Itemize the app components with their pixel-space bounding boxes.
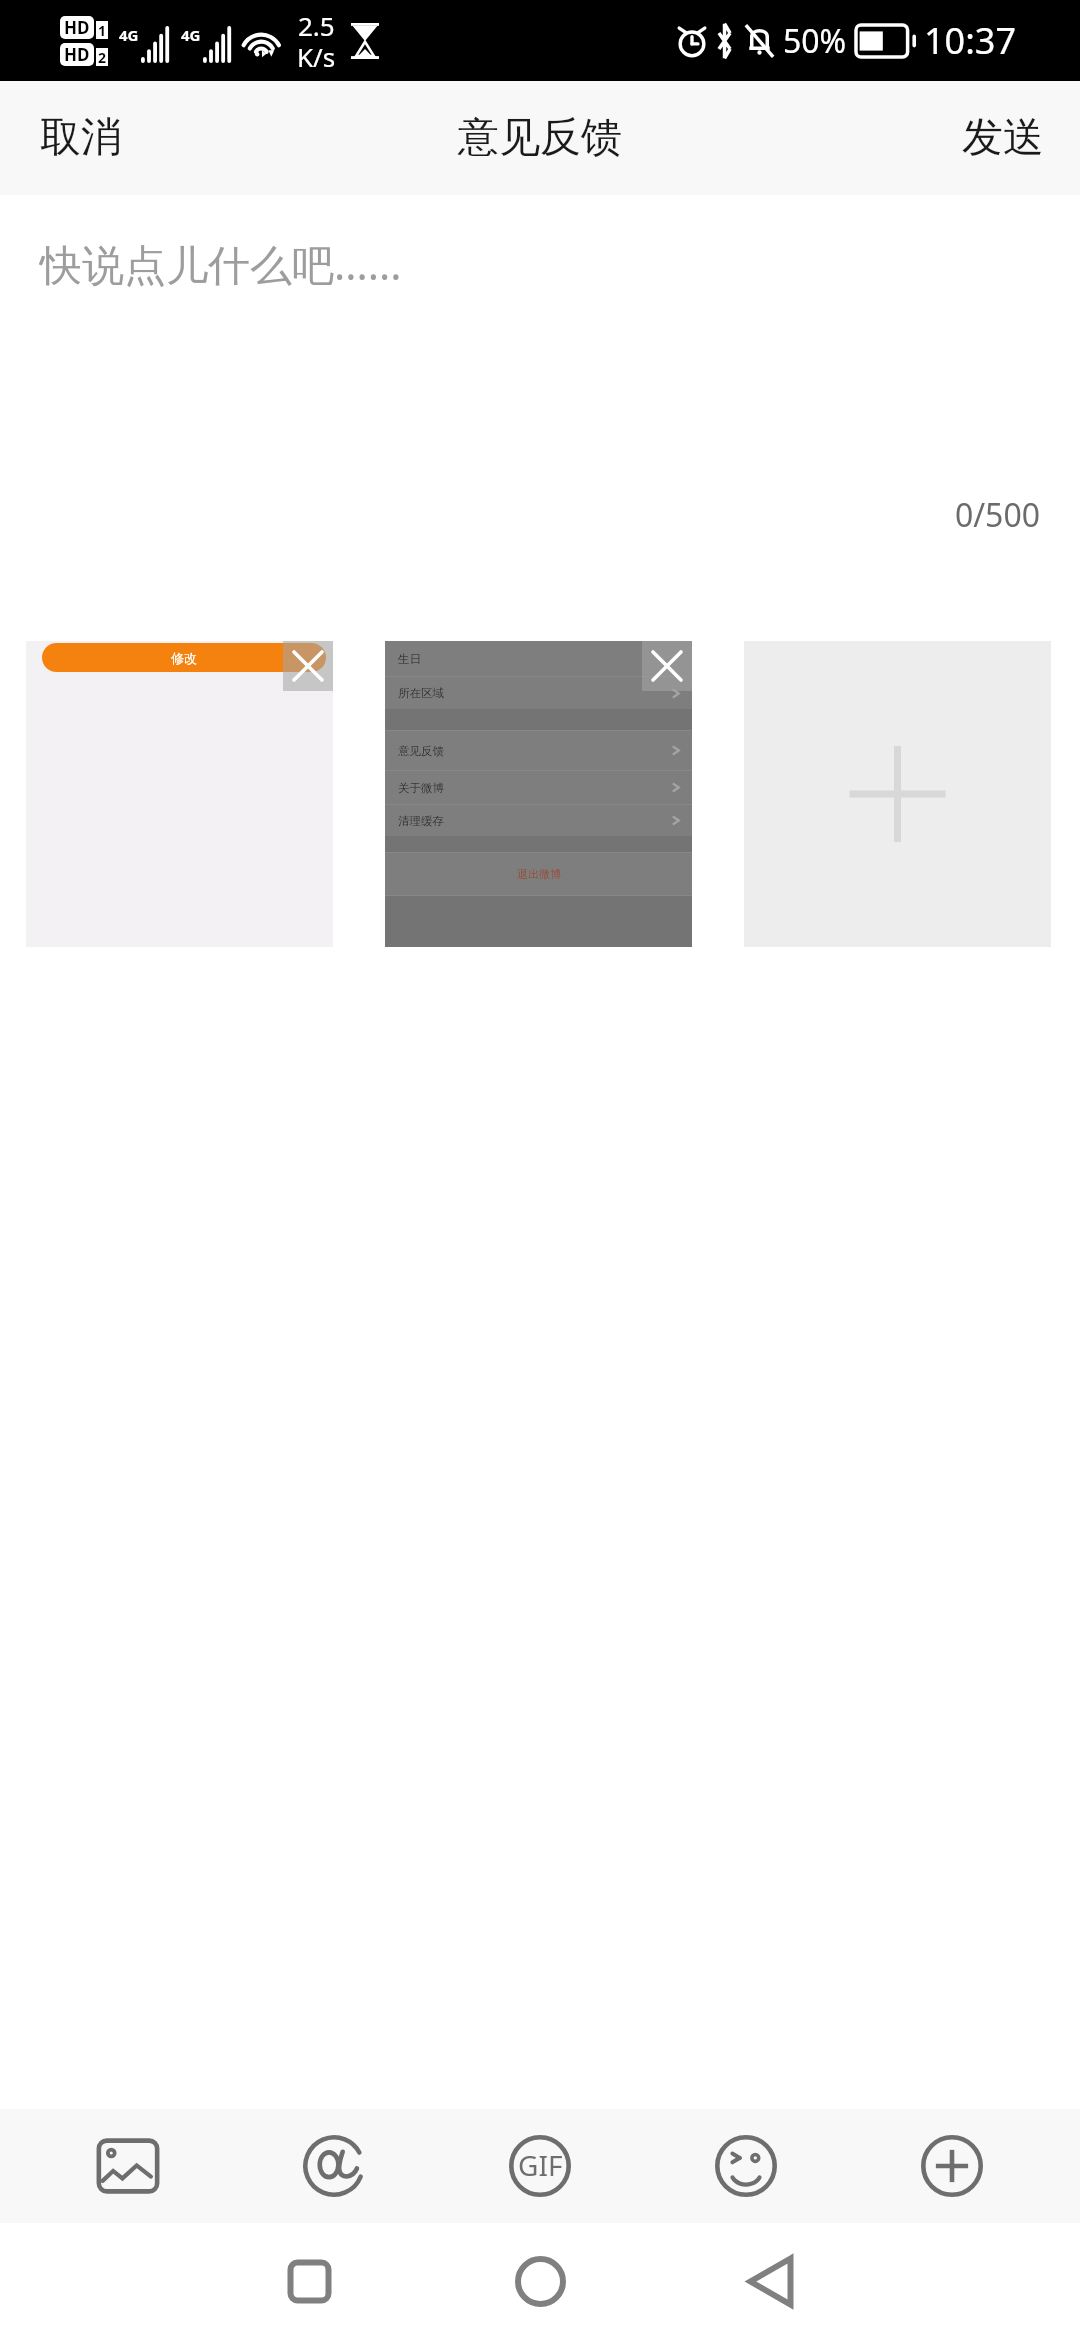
button[interactable]: 取消 xyxy=(0,81,162,195)
button[interactable]: Home xyxy=(425,2223,656,2340)
staticText: 4G xyxy=(119,25,139,45)
staticText: 0/500 xyxy=(0,493,1040,537)
staticText: 2.5 xyxy=(298,8,335,43)
button[interactable]: Back xyxy=(656,2223,887,2340)
staticText: 10:37 xyxy=(924,16,1017,65)
staticText: 退出微博 xyxy=(517,867,561,881)
staticText: 快说点儿什么吧...... xyxy=(40,235,402,292)
button[interactable]: GIF xyxy=(437,2109,643,2223)
staticText: 清理缓存 xyxy=(398,814,444,828)
button[interactable]: Photo xyxy=(25,2109,231,2223)
button[interactable]: Remove image xyxy=(642,641,692,691)
button[interactable]: More xyxy=(849,2109,1055,2223)
button[interactable]: Emoji xyxy=(643,2109,849,2223)
button[interactable]: 生日 xyxy=(385,641,692,947)
staticText: 1 xyxy=(98,21,107,39)
staticText: K/s xyxy=(297,39,336,74)
staticText: 意见反馈 xyxy=(458,112,622,164)
button[interactable]: 发送 xyxy=(922,81,1080,195)
staticText: 意见反馈 xyxy=(398,744,444,758)
staticText: 取消 xyxy=(40,112,122,164)
staticText: 发送 xyxy=(962,112,1044,164)
staticText: 修改 xyxy=(171,650,197,666)
staticText: 4G xyxy=(181,25,201,45)
button[interactable]: Remove image xyxy=(283,641,333,691)
staticText: 50% xyxy=(783,19,847,63)
button[interactable]: 修改 xyxy=(26,641,333,947)
staticText: HD xyxy=(64,16,90,39)
staticText: 关于微博 xyxy=(398,781,444,795)
staticText: 2 xyxy=(98,48,107,66)
button[interactable]: Recents xyxy=(193,2223,425,2340)
staticText: 所在区域 xyxy=(398,686,444,700)
button[interactable]: Mention xyxy=(231,2109,437,2223)
staticText: GIF xyxy=(518,2146,563,2184)
staticText: HD xyxy=(64,43,90,66)
staticText: 生日 xyxy=(398,652,421,666)
